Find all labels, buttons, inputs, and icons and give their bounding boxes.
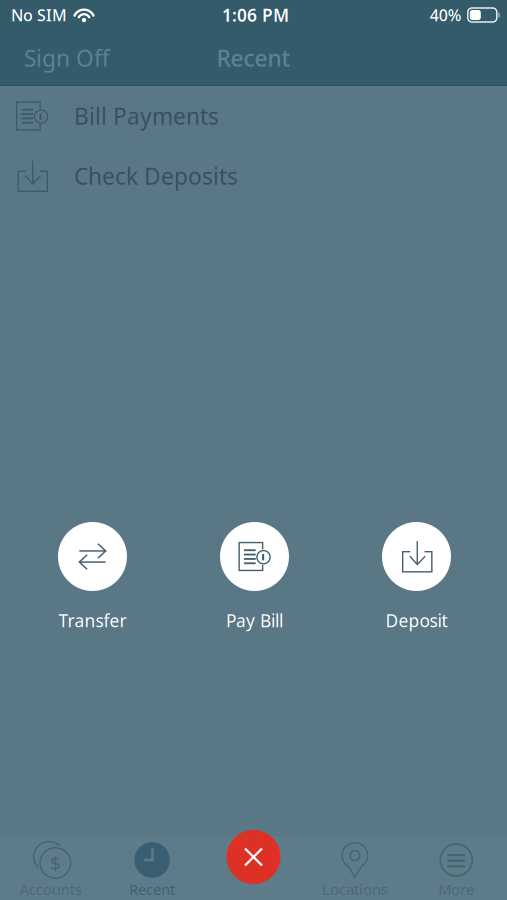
- button[interactable]: More: [406, 836, 507, 900]
- staticText: Locations: [322, 879, 388, 899]
- button[interactable]: [203, 836, 304, 900]
- staticText: More: [438, 879, 474, 899]
- button[interactable]: Recent: [101, 836, 203, 900]
- staticText: Recent: [129, 879, 175, 899]
- button[interactable]: Transfer: [11, 522, 173, 632]
- button[interactable]: Check Deposits: [0, 146, 507, 206]
- button[interactable]: Sign Off: [12, 36, 122, 80]
- button[interactable]: $: [0, 836, 101, 900]
- staticText: Pay Bill: [226, 609, 283, 632]
- staticText: $: [50, 850, 61, 875]
- staticText: 1:06 PM: [222, 3, 289, 26]
- staticText: Bill Payments: [74, 101, 219, 131]
- staticText: Transfer: [58, 609, 126, 632]
- button[interactable]: Bill Payments: [0, 86, 507, 146]
- button[interactable]: Pay Bill: [173, 522, 335, 632]
- staticText: Recent: [216, 43, 290, 73]
- staticText: Sign Off: [24, 43, 110, 73]
- button[interactable]: Close quick actions: [226, 830, 280, 884]
- staticText: Accounts: [20, 879, 82, 899]
- staticText: 40%: [430, 4, 462, 26]
- button[interactable]: Locations: [304, 836, 406, 900]
- staticText: No SIM: [11, 4, 67, 26]
- staticText: Deposit: [385, 609, 447, 632]
- staticText: Check Deposits: [74, 161, 238, 191]
- button[interactable]: Deposit: [335, 522, 497, 632]
